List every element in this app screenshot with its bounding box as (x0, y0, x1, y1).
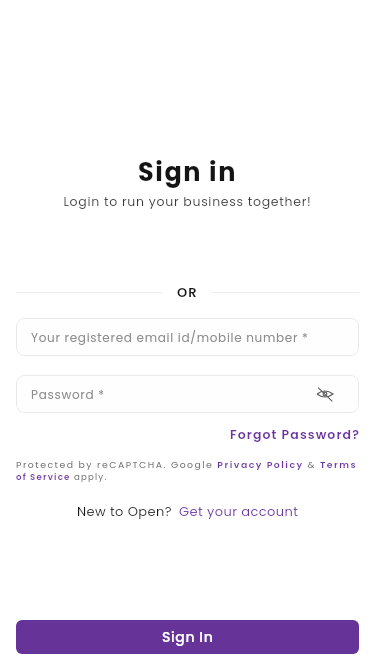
staticText: Sign in (0, 154, 375, 190)
button[interactable]: Show password (313, 382, 337, 406)
staticText: OR (177, 283, 198, 301)
staticText: Protected by reCAPTCHA. Google Privacy P… (16, 458, 375, 471)
staticText: Password * (31, 386, 105, 403)
button[interactable]: Your registered email id/mobile number * (16, 318, 359, 356)
staticText: Your registered email id/mobile number * (31, 329, 309, 346)
button[interactable]: Password * (16, 375, 359, 413)
staticText: New to Open? (77, 502, 172, 520)
button[interactable]: Sign In (16, 620, 359, 654)
button[interactable]: Get your account (179, 502, 299, 520)
button[interactable]: Forgot Password? (0, 426, 360, 443)
staticText: Login to run your business together! (0, 193, 375, 210)
staticText: of Service apply. (16, 471, 375, 483)
staticText: Sign In (162, 627, 214, 647)
